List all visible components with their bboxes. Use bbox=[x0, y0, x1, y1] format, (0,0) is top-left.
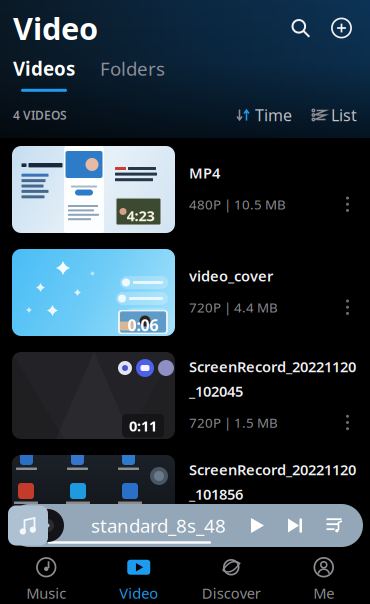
staticText: _101856 bbox=[189, 484, 243, 504]
button[interactable]: Music bbox=[0, 550, 92, 604]
staticText: 720P | 1.5 MB bbox=[189, 414, 278, 431]
staticText: 4 VIDEOS bbox=[13, 107, 67, 123]
button[interactable]: standard_8s_48 bbox=[8, 504, 363, 547]
button[interactable]: More options bbox=[342, 295, 353, 319]
staticText: 0:11 bbox=[129, 416, 157, 435]
staticText: Video bbox=[119, 583, 158, 603]
button[interactable]: Video bbox=[92, 550, 185, 604]
staticText: Me bbox=[313, 583, 334, 603]
staticText: Video bbox=[13, 8, 98, 48]
button[interactable]: Time bbox=[236, 104, 292, 126]
staticText: Time bbox=[255, 104, 292, 126]
button[interactable]: More options bbox=[342, 192, 353, 216]
button[interactable]: Add video bbox=[326, 12, 357, 43]
button[interactable]: Folders bbox=[75, 56, 165, 92]
button[interactable]: List bbox=[292, 104, 357, 126]
staticText: Music bbox=[26, 583, 66, 603]
button[interactable]: Me bbox=[277, 550, 370, 604]
button[interactable]: Playlist bbox=[320, 512, 349, 539]
staticText: Discover bbox=[202, 583, 261, 603]
staticText: ScreenRecord_20221120 bbox=[189, 460, 356, 479]
staticText: standard_8s_48 bbox=[91, 513, 226, 538]
staticText: ScreenRecord_20221120 bbox=[189, 357, 356, 376]
staticText: 480P | 10.5 MB bbox=[189, 195, 286, 213]
button[interactable]: 0:06 bbox=[0, 241, 370, 344]
button[interactable]: Play bbox=[245, 512, 270, 539]
staticText: video_cover bbox=[189, 266, 273, 286]
staticText: List bbox=[331, 104, 357, 126]
staticText: Folders bbox=[100, 56, 165, 81]
button[interactable]: Discover bbox=[185, 550, 277, 604]
button[interactable]: Next track bbox=[282, 512, 308, 538]
staticText: 720P | 1.5 MB bbox=[189, 517, 278, 534]
button[interactable]: ScreenRecord_20221120 bbox=[0, 447, 370, 550]
button[interactable]: Videos bbox=[13, 56, 75, 92]
staticText: 0:06 bbox=[127, 314, 158, 336]
staticText: MP4 bbox=[189, 163, 220, 183]
button[interactable]: 0:11 bbox=[0, 344, 370, 447]
button[interactable]: More options bbox=[342, 411, 353, 434]
button[interactable]: Search bbox=[285, 12, 316, 43]
staticText: _102045 bbox=[189, 381, 243, 401]
button[interactable]: Now playing bbox=[8, 505, 48, 545]
staticText: Videos bbox=[13, 56, 75, 81]
button[interactable]: 4:23 bbox=[0, 138, 370, 241]
staticText: 4:23 bbox=[126, 206, 154, 225]
staticText: 720P | 4.4 MB bbox=[189, 298, 278, 316]
